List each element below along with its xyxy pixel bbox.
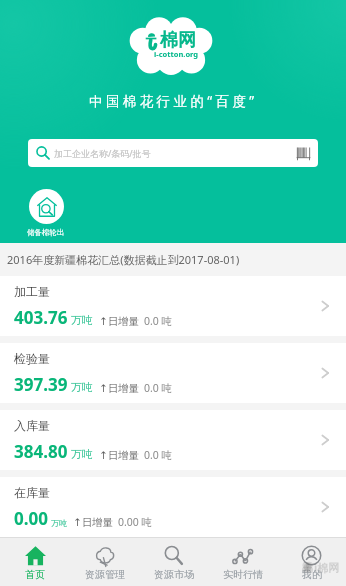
staticText: 0.00 bbox=[14, 507, 48, 530]
button[interactable]: 加工量 bbox=[0, 276, 346, 336]
staticText: 384.80 bbox=[14, 440, 68, 463]
staticText: 资源管理 bbox=[85, 568, 125, 581]
button[interactable]: 首页 bbox=[0, 538, 70, 586]
staticText: i棉网 bbox=[314, 560, 340, 575]
staticText: ↑日增量 bbox=[73, 516, 114, 529]
staticText: 在库量 bbox=[14, 485, 50, 500]
staticText: 加工企业名称/条码/批号 bbox=[54, 147, 151, 159]
staticText: 0.0 吨 bbox=[144, 314, 173, 328]
staticText: 万吨 bbox=[71, 380, 93, 394]
staticText: 储备棉轮出 bbox=[27, 228, 65, 237]
staticText: 397.39 bbox=[14, 373, 68, 396]
staticText: 加工量 bbox=[14, 284, 50, 299]
button[interactable]: 实时行情 bbox=[208, 538, 277, 586]
staticText: 万吨 bbox=[51, 518, 67, 528]
staticText: 资源市场 bbox=[154, 568, 194, 581]
staticText: 棉网 bbox=[160, 29, 196, 52]
staticText: 万吨 bbox=[71, 313, 93, 327]
staticText: 首页 bbox=[25, 568, 45, 581]
staticText: 0.00 吨 bbox=[118, 515, 153, 529]
button[interactable]: 储备棉轮出 bbox=[9, 189, 83, 237]
staticText: ↑日增量 bbox=[99, 449, 140, 462]
button[interactable]: 我的 bbox=[277, 538, 346, 586]
staticText: 403.76 bbox=[14, 306, 68, 329]
staticText: 万吨 bbox=[71, 447, 93, 461]
staticText: 中国棉花行业的“百度” bbox=[89, 92, 258, 110]
staticText: i-cotton.org bbox=[154, 49, 199, 59]
staticText: 检验量 bbox=[14, 351, 50, 366]
button[interactable]: 在库量 bbox=[0, 477, 346, 537]
staticText: 入库量 bbox=[14, 418, 50, 433]
button[interactable]: 资源管理 bbox=[70, 538, 139, 586]
staticText: 0.0 吨 bbox=[144, 381, 173, 395]
button[interactable]: 入库量 bbox=[0, 410, 346, 470]
button[interactable]: 检验量 bbox=[0, 343, 346, 403]
other: 储备棉轮出 bbox=[36, 196, 58, 218]
staticText: 0.0 吨 bbox=[144, 448, 173, 462]
staticText: ↑日增量 bbox=[99, 315, 140, 328]
staticText: 2016年度新疆棉花汇总(数据截止到2017-08-01) bbox=[7, 252, 240, 267]
button[interactable]: 资源市场 bbox=[139, 538, 208, 586]
button[interactable]: 扫码 bbox=[296, 146, 311, 161]
staticText: 我的 bbox=[302, 568, 322, 581]
staticText: ↑日增量 bbox=[99, 382, 140, 395]
button[interactable]: 加工企业名称/条码/批号 bbox=[28, 139, 318, 167]
staticText: 实时行情 bbox=[223, 568, 263, 581]
